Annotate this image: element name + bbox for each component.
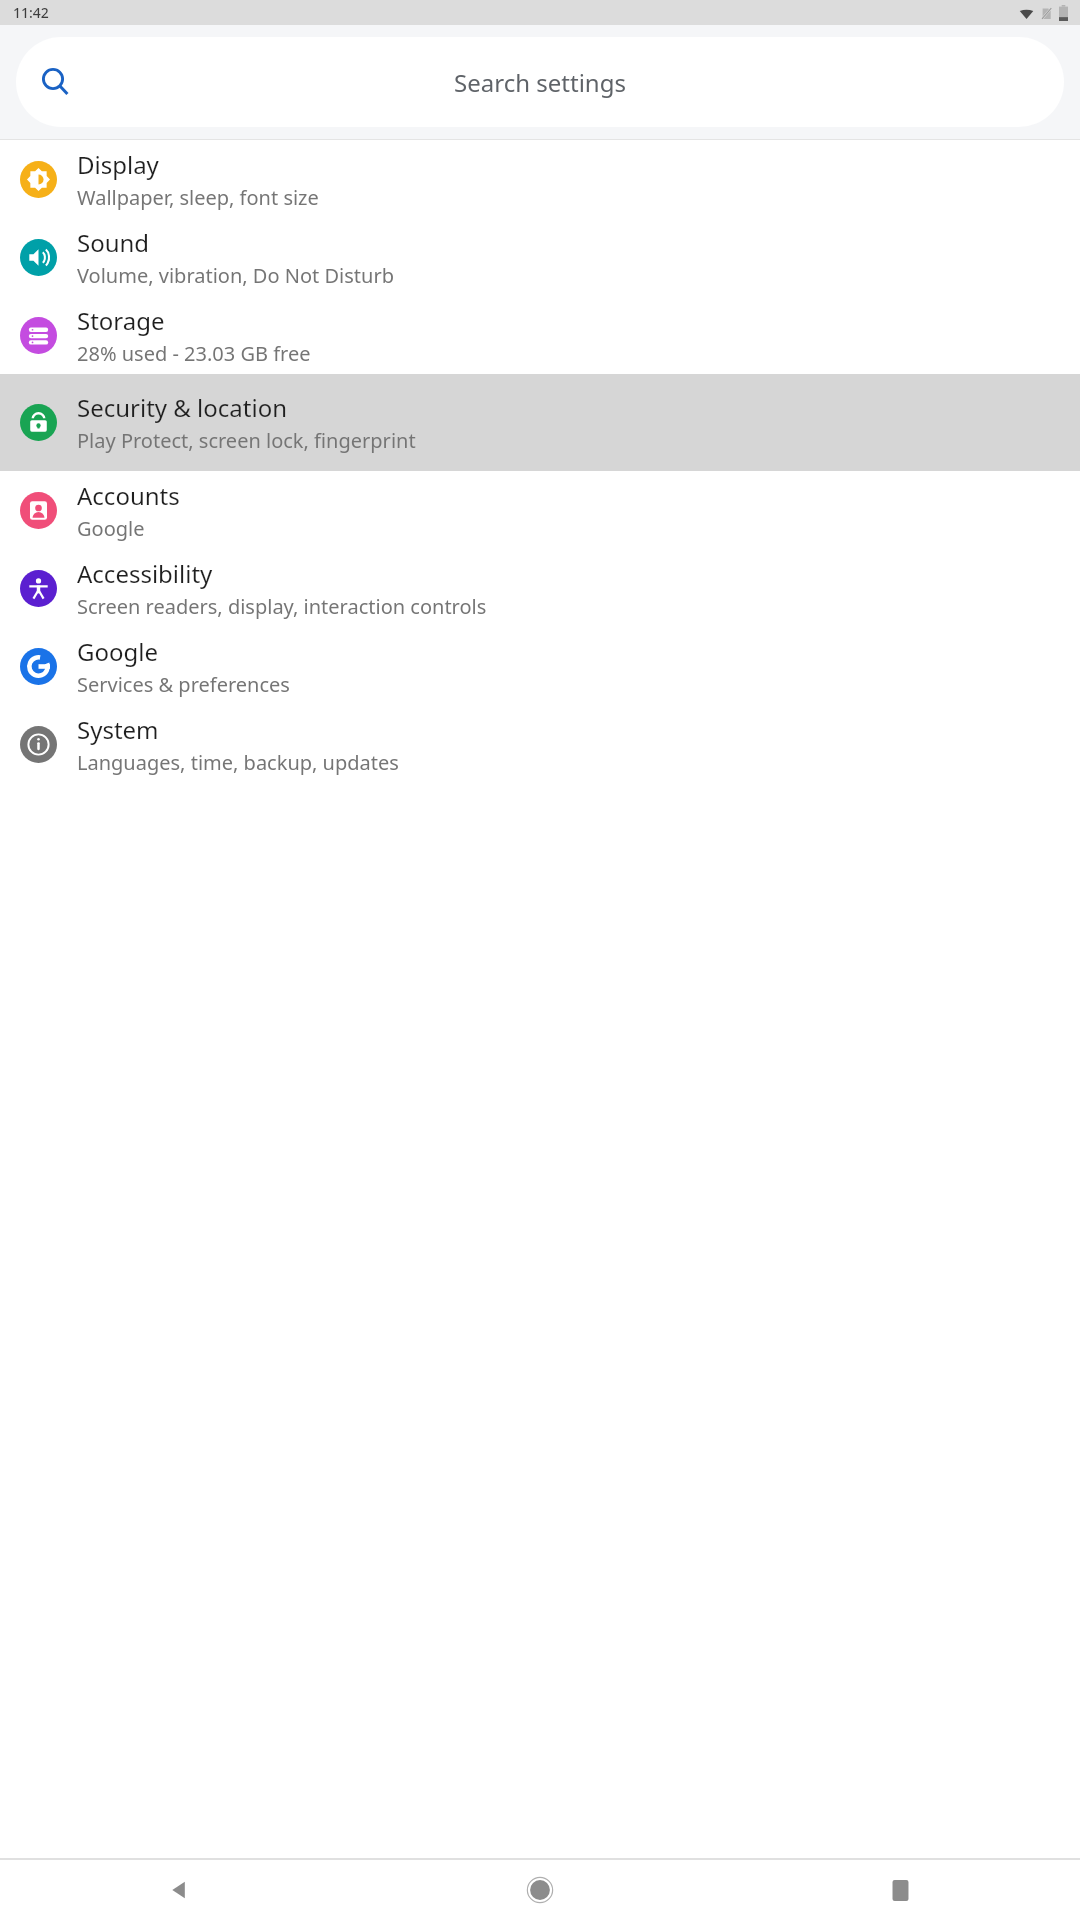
staticText: Accounts (77, 479, 180, 512)
button[interactable]: Sound (0, 218, 1080, 296)
button[interactable]: Accessibility (0, 549, 1080, 627)
staticText: Accessibility (77, 557, 213, 590)
staticText: Security & location (77, 391, 288, 424)
button[interactable]: System (0, 705, 1080, 783)
staticText: Languages, time, backup, updates (77, 749, 399, 776)
button[interactable]: Display (0, 140, 1080, 218)
button[interactable]: Back (0, 1860, 360, 1920)
staticText: Storage (77, 304, 165, 337)
button[interactable]: Recent apps (720, 1860, 1080, 1920)
staticText: Search settings (454, 66, 626, 99)
staticText: 28% used - 23.03 GB free (77, 340, 311, 367)
button[interactable]: Home (360, 1860, 720, 1920)
button[interactable]: Security & location (0, 374, 1080, 471)
staticText: Volume, vibration, Do Not Disturb (77, 262, 394, 289)
staticText: 11:42 (13, 3, 49, 22)
button[interactable]: Storage (0, 296, 1080, 374)
staticText: Google (77, 635, 158, 668)
staticText: Play Protect, screen lock, fingerprint (77, 427, 416, 454)
staticText: Screen readers, display, interaction con… (77, 593, 487, 620)
staticText: Sound (77, 226, 150, 259)
staticText: Display (77, 148, 159, 181)
button[interactable]: Search settings (16, 37, 1064, 127)
button[interactable]: Accounts (0, 471, 1080, 549)
staticText: Services & preferences (77, 671, 290, 698)
staticText: Wallpaper, sleep, font size (77, 184, 319, 211)
staticText: System (77, 713, 159, 746)
button[interactable]: Google (0, 627, 1080, 705)
staticText: Google (77, 515, 145, 542)
